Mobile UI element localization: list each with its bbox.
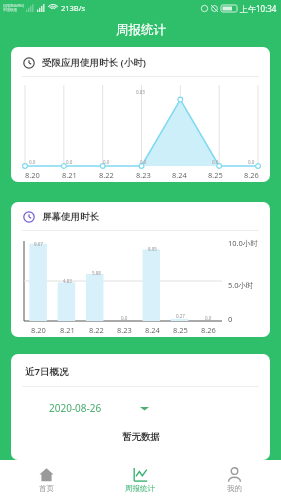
staticText: 暂无数据 [122, 431, 160, 443]
staticText: 0.27 [176, 313, 185, 319]
staticText: 8.21 [60, 325, 75, 335]
staticText: 0.0 [103, 159, 110, 165]
staticText: 0.83 [136, 89, 145, 95]
staticText: 8.24 [145, 325, 160, 335]
staticText: 仅限紧急呼叫 [3, 4, 24, 8]
staticText: 5.0小时 [228, 280, 254, 290]
staticText: 我的 [227, 484, 242, 493]
button[interactable]: 首页 [0, 460, 93, 500]
staticText: 周报统计 [116, 22, 166, 38]
staticText: 8.25 [208, 170, 223, 180]
staticText: 8.22 [89, 325, 104, 335]
button[interactable]: 我的 [187, 460, 281, 500]
staticText: 8.23 [136, 170, 151, 180]
staticText: 8.26 [201, 325, 216, 335]
staticText: 0.0 [66, 159, 73, 165]
staticText: 近7日概况 [25, 365, 69, 378]
staticText: 屏幕使用时长 [42, 211, 99, 223]
staticText: 受限应用使用时长 (小时) [42, 56, 146, 69]
staticText: 8.21 [62, 170, 77, 180]
button[interactable]: 周报统计 [93, 460, 187, 500]
staticText: 首页 [39, 484, 54, 493]
staticText: 0 [228, 314, 233, 324]
staticText: 0.0 [121, 315, 128, 321]
staticText: 4.83 [63, 278, 72, 284]
staticText: 中国联通 [3, 8, 17, 12]
staticText: 8.23 [117, 325, 132, 335]
staticText: 0.0 [205, 315, 212, 321]
staticText: 8.24 [172, 170, 187, 180]
staticText: 2020-08-26 [49, 401, 102, 415]
staticText: 213B/s [61, 3, 86, 13]
staticText: 8.26 [244, 170, 259, 180]
staticText: 10.0小时 [228, 238, 258, 248]
staticText: 8.22 [99, 170, 114, 180]
other: 展开日期选择 [140, 404, 149, 413]
staticText: 0.0 [248, 159, 255, 165]
staticText: 0.0 [212, 159, 219, 165]
staticText: 0.0 [29, 159, 36, 165]
staticText: 上午10:34 [240, 3, 277, 14]
staticText: 8.25 [173, 325, 188, 335]
staticText: 0.0 [140, 159, 147, 165]
staticText: 9.67 [34, 241, 43, 247]
button[interactable]: 2020-08-26 [49, 401, 149, 415]
staticText: 8.20 [31, 325, 46, 335]
staticText: 8.20 [25, 170, 40, 180]
staticText: 周报统计 [125, 484, 155, 493]
staticText: 5.88 [92, 270, 101, 276]
staticText: 8.95 [148, 246, 157, 252]
